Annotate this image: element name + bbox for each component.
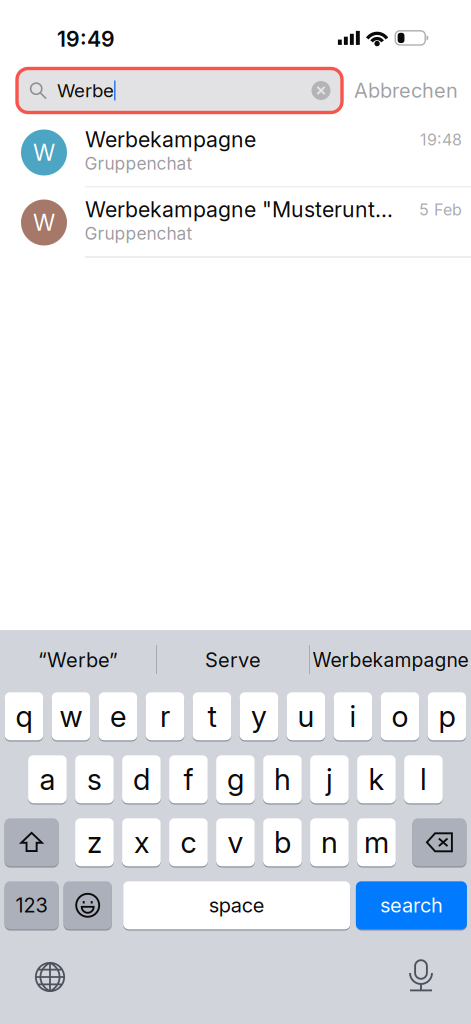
staticText: p <box>438 699 455 734</box>
staticText: space <box>209 893 265 917</box>
staticText: q <box>15 699 32 734</box>
staticText: o <box>391 699 408 734</box>
staticText: w <box>59 699 82 734</box>
staticText: Werbekampagne <box>85 126 256 152</box>
button[interactable]: d <box>122 754 161 804</box>
button[interactable]: Dictation <box>399 953 443 997</box>
staticText: m <box>364 825 389 860</box>
staticText: t <box>207 699 216 734</box>
button[interactable]: o <box>381 691 419 741</box>
button[interactable]: j <box>310 754 349 804</box>
staticText: i <box>349 699 356 734</box>
button[interactable]: Abbrechen <box>354 68 464 112</box>
staticText: b <box>274 825 291 860</box>
staticText: v <box>227 825 243 860</box>
staticText: j <box>326 762 333 797</box>
staticText: search <box>380 893 443 917</box>
button[interactable]: u <box>287 691 325 741</box>
button[interactable]: x <box>122 817 161 867</box>
button[interactable]: v <box>216 817 255 867</box>
staticText: r <box>160 699 170 734</box>
button[interactable]: w <box>52 691 90 741</box>
button[interactable]: Serve <box>157 631 309 689</box>
button[interactable]: k <box>357 754 396 804</box>
button[interactable]: r <box>146 691 184 741</box>
button[interactable]: “Werbe” <box>0 631 156 689</box>
staticText: W <box>33 139 55 166</box>
button[interactable]: Clear text <box>304 73 338 107</box>
button[interactable]: space <box>123 880 350 930</box>
button[interactable]: Emoji <box>64 880 112 930</box>
button[interactable]: h <box>263 754 302 804</box>
staticText: d <box>133 762 150 797</box>
button[interactable]: i <box>334 691 372 741</box>
button[interactable]: W <box>0 117 471 187</box>
staticText: “Werbe” <box>38 648 118 672</box>
staticText: g <box>227 762 244 797</box>
staticText: 5 Feb <box>419 200 462 219</box>
button[interactable]: f <box>169 754 208 804</box>
staticText: z <box>87 825 102 860</box>
button[interactable]: Werbekampagne <box>310 631 471 689</box>
staticText: n <box>321 825 338 860</box>
staticText: 19:48 <box>420 130 462 149</box>
button[interactable]: t <box>193 691 231 741</box>
button[interactable]: 123 <box>5 880 59 930</box>
staticText: Gruppenchat <box>84 223 192 244</box>
staticText: s <box>87 762 102 797</box>
staticText: Serve <box>205 648 261 672</box>
button[interactable]: l <box>404 754 443 804</box>
button[interactable]: g <box>216 754 255 804</box>
button[interactable]: z <box>75 817 114 867</box>
button[interactable]: n <box>310 817 349 867</box>
button[interactable]: m <box>357 817 396 867</box>
button[interactable]: p <box>428 691 466 741</box>
staticText: c <box>180 825 196 860</box>
staticText: Werbe <box>57 79 114 102</box>
button[interactable]: a <box>28 754 67 804</box>
button[interactable]: y <box>240 691 278 741</box>
staticText: e <box>110 699 126 734</box>
staticText: u <box>297 699 314 734</box>
staticText: f <box>183 762 193 797</box>
staticText: Gruppenchat <box>84 153 192 174</box>
staticText: y <box>251 699 267 734</box>
staticText: W <box>33 209 55 236</box>
staticText: Werbekampagne "Musterunter… <box>85 196 398 222</box>
button[interactable]: b <box>263 817 302 867</box>
staticText: k <box>368 762 384 797</box>
staticText: l <box>420 762 427 797</box>
staticText: Abbrechen <box>354 78 458 103</box>
staticText: a <box>39 762 55 797</box>
staticText: 19:49 <box>57 26 115 52</box>
button[interactable]: W <box>0 187 471 257</box>
staticText: 123 <box>16 893 48 917</box>
button[interactable]: search <box>356 880 467 930</box>
staticText: x <box>134 825 149 860</box>
button[interactable]: e <box>99 691 137 741</box>
staticText: Werbekampagne <box>312 648 468 672</box>
button[interactable]: c <box>169 817 208 867</box>
button[interactable]: q <box>5 691 43 741</box>
staticText: h <box>274 762 291 797</box>
button[interactable]: Switch keyboard <box>28 955 72 999</box>
button[interactable]: Delete <box>412 817 466 867</box>
button[interactable]: Shift <box>5 817 59 867</box>
button[interactable]: s <box>75 754 114 804</box>
